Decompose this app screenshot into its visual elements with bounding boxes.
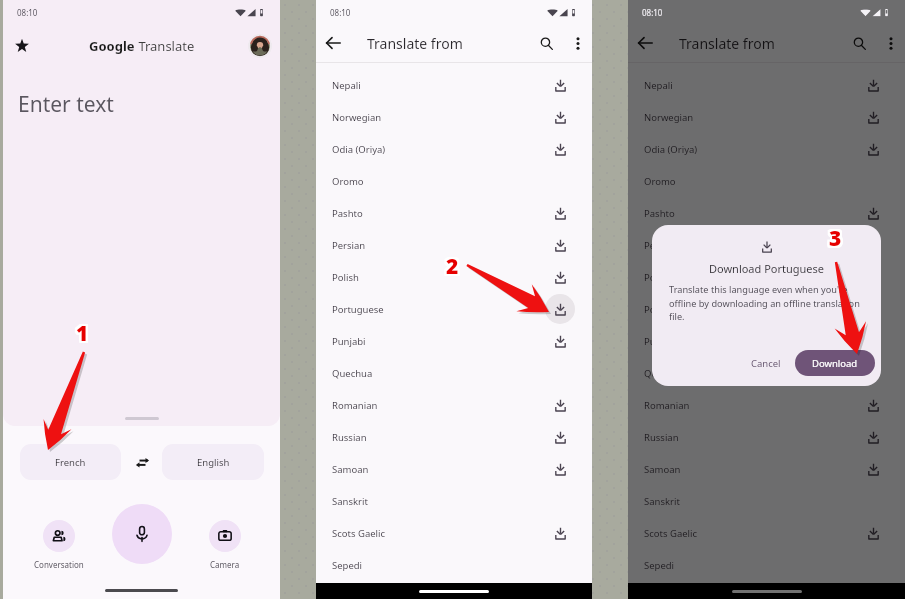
staticText: 1: [77, 321, 90, 350]
button[interactable]: Russian: [628, 421, 905, 453]
button[interactable]: Quechua: [628, 357, 905, 389]
staticText: 2: [444, 254, 457, 283]
button[interactable]: Norwegian: [628, 101, 905, 133]
button[interactable]: Download Persian: [858, 230, 888, 260]
button[interactable]: Download Persian: [545, 230, 575, 260]
button[interactable]: Back: [319, 29, 347, 57]
staticText: 1: [74, 321, 87, 350]
staticText: 3: [827, 226, 840, 255]
button[interactable]: Download Pashto: [545, 198, 575, 228]
button[interactable]: Romanian: [316, 389, 592, 421]
button[interactable]: Sepedi: [628, 549, 905, 581]
staticText: Download: [812, 357, 858, 370]
button[interactable]: Punjabi: [316, 325, 592, 357]
button[interactable]: Polish: [316, 261, 592, 293]
button[interactable]: Norwegian: [316, 101, 592, 133]
button[interactable]: Oromo: [316, 165, 592, 197]
staticText: Nepali: [332, 79, 361, 92]
button[interactable]: Swap languages: [125, 444, 159, 480]
staticText: 1: [76, 321, 89, 350]
staticText: 08:10: [330, 7, 351, 18]
button[interactable]: Camera: [183, 520, 266, 570]
staticText: 3: [829, 224, 842, 253]
button[interactable]: Download Punjabi: [858, 326, 888, 356]
staticText: Samoan: [332, 463, 369, 476]
staticText: 08:10: [17, 7, 38, 18]
button[interactable]: Search: [534, 31, 558, 55]
button[interactable]: Polish: [628, 261, 905, 293]
staticText: 1: [76, 317, 89, 346]
button[interactable]: Speak: [112, 504, 172, 564]
staticText: Persian: [332, 239, 366, 252]
button[interactable]: Download Romanian: [858, 390, 888, 420]
button[interactable]: Pashto: [316, 197, 592, 229]
button[interactable]: Download Punjabi: [545, 326, 575, 356]
button[interactable]: Favorites: [8, 32, 36, 60]
button[interactable]: Cancel: [740, 350, 792, 376]
button[interactable]: Account: [248, 34, 272, 58]
staticText: Polish: [644, 271, 671, 284]
button[interactable]: Portuguese: [316, 293, 592, 325]
button[interactable]: More options: [881, 33, 901, 53]
button[interactable]: Odia (Oriya): [628, 133, 905, 165]
button[interactable]: Russian: [316, 421, 592, 453]
button[interactable]: Download Romanian: [545, 390, 575, 420]
button[interactable]: Download Nepali: [545, 70, 575, 100]
button[interactable]: Samoan: [316, 453, 592, 485]
staticText: 3: [827, 225, 840, 254]
button[interactable]: More options: [568, 33, 588, 53]
button[interactable]: French: [20, 444, 121, 480]
button[interactable]: Download Russian: [858, 422, 888, 452]
button[interactable]: Download Norwegian: [545, 102, 575, 132]
button[interactable]: Search: [847, 31, 871, 55]
button[interactable]: Conversation: [17, 520, 100, 570]
staticText: Translate this language even when you're…: [669, 283, 866, 322]
button[interactable]: Sanskrit: [316, 485, 592, 517]
button[interactable]: Download Portuguese: [545, 294, 575, 324]
staticText: 2: [448, 252, 461, 281]
button[interactable]: Odia (Oriya): [316, 133, 592, 165]
staticText: 3: [831, 226, 844, 255]
button[interactable]: Oromo: [628, 165, 905, 197]
button[interactable]: Samoan: [628, 453, 905, 485]
button[interactable]: Download Scots Gaelic: [545, 518, 575, 548]
button[interactable]: Download Russian: [545, 422, 575, 452]
button[interactable]: Download Scots Gaelic: [858, 518, 888, 548]
button[interactable]: Download Nepali: [858, 70, 888, 100]
button[interactable]: Back: [631, 29, 659, 57]
staticText: Romanian: [332, 399, 378, 412]
staticText: 2: [446, 254, 459, 283]
button[interactable]: Scots Gaelic: [628, 517, 905, 549]
button[interactable]: Download Pashto: [858, 198, 888, 228]
button[interactable]: Persian: [628, 229, 905, 261]
button[interactable]: Download Norwegian: [858, 102, 888, 132]
staticText: 3: [827, 224, 840, 253]
button[interactable]: Download Samoan: [545, 454, 575, 484]
button[interactable]: Pashto: [628, 197, 905, 229]
button[interactable]: Nepali: [316, 69, 592, 101]
button[interactable]: Download Polish: [545, 262, 575, 292]
staticText: 3: [829, 226, 842, 255]
button[interactable]: Download Portuguese: [858, 294, 888, 324]
staticText: English: [197, 456, 230, 469]
button[interactable]: Punjabi: [628, 325, 905, 357]
button[interactable]: Download Polish: [858, 262, 888, 292]
button[interactable]: Persian: [316, 229, 592, 261]
button[interactable]: Download Odia (Oriya): [545, 134, 575, 164]
staticText: Oromo: [332, 175, 364, 188]
button[interactable]: Portuguese: [628, 293, 905, 325]
button[interactable]: Nepali: [628, 69, 905, 101]
button[interactable]: English: [162, 444, 264, 480]
button[interactable]: Romanian: [628, 389, 905, 421]
staticText: 1: [74, 317, 87, 346]
staticText: 08:10: [642, 7, 663, 18]
button[interactable]: Sanskrit: [628, 485, 905, 517]
button[interactable]: Sepedi: [316, 549, 592, 581]
button[interactable]: Download Samoan: [858, 454, 888, 484]
button[interactable]: Download Odia (Oriya): [858, 134, 888, 164]
button[interactable]: Quechua: [316, 357, 592, 389]
staticText: 1: [75, 321, 88, 350]
staticText: 1: [78, 318, 91, 347]
button[interactable]: Scots Gaelic: [316, 517, 592, 549]
button[interactable]: Download: [795, 350, 875, 376]
